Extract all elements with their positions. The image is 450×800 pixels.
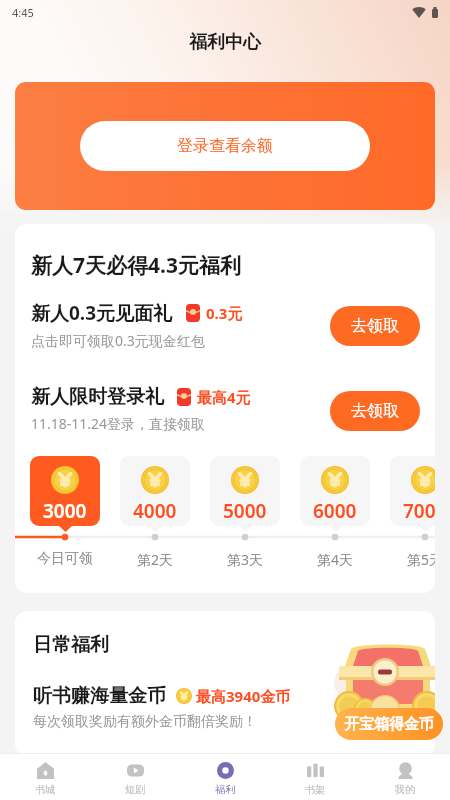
staticText: 第2天 [137, 550, 174, 569]
button[interactable]: 去领取 [330, 306, 420, 346]
staticText: 我的 [395, 783, 415, 796]
button[interactable]: 4000 [120, 456, 190, 526]
staticText: 登录查看余额 [177, 136, 273, 156]
staticText: 7000 [403, 498, 435, 524]
staticText: 第5天 [407, 550, 435, 569]
staticText: 书城 [35, 783, 55, 796]
button[interactable]: 我的 [360, 762, 450, 796]
button[interactable]: 3000 [30, 456, 100, 526]
staticText: 听书赚海量金币 [33, 684, 166, 708]
staticText: 去领取 [351, 316, 399, 336]
staticText: 点击即可领取0.3元现金红包 [31, 331, 205, 350]
staticText: 福利中心 [189, 31, 261, 54]
staticText: 福利 [215, 783, 235, 796]
staticText: 5000 [223, 498, 267, 524]
staticText: 新人0.3元见面礼 [31, 300, 173, 326]
button[interactable]: 6000 [300, 456, 370, 526]
staticText: 4:45 [12, 5, 34, 20]
staticText: 日常福利 [33, 633, 109, 657]
button[interactable]: 书城 [0, 762, 90, 796]
staticText: 开宝箱得金币 [344, 715, 434, 734]
button[interactable]: 登录查看余额 [15, 82, 435, 210]
button[interactable]: 5000 [210, 456, 280, 526]
staticText: 0.3元 [206, 303, 243, 323]
staticText: 每次领取奖励有额外金币翻倍奖励！ [33, 713, 257, 731]
staticText: 新人限时登录礼 [31, 385, 164, 409]
button[interactable]: 去领取 [330, 391, 420, 431]
button[interactable]: 登录查看余额 [80, 121, 370, 171]
button[interactable]: 书架 [270, 762, 360, 796]
button[interactable]: 短剧 [90, 762, 180, 796]
button[interactable]: 7000 [390, 456, 435, 526]
staticText: 4000 [133, 498, 177, 524]
staticText: 去领取 [351, 401, 399, 421]
button[interactable]: 福利 [180, 762, 270, 796]
staticText: 最高4元 [197, 387, 251, 407]
staticText: 11.18-11.24登录，直接领取 [31, 414, 206, 433]
staticText: 3000 [43, 498, 87, 524]
staticText: 新人7天必得4.3元福利 [31, 251, 241, 280]
staticText: 第4天 [317, 550, 354, 569]
staticText: 今日可领 [37, 550, 93, 568]
button[interactable]: 开宝箱得金币 [335, 708, 443, 740]
staticText: 短剧 [125, 783, 145, 796]
staticText: 6000 [313, 498, 357, 524]
staticText: 最高3940金币 [196, 686, 291, 706]
staticText: 书架 [305, 783, 325, 796]
staticText: 第3天 [227, 550, 264, 569]
